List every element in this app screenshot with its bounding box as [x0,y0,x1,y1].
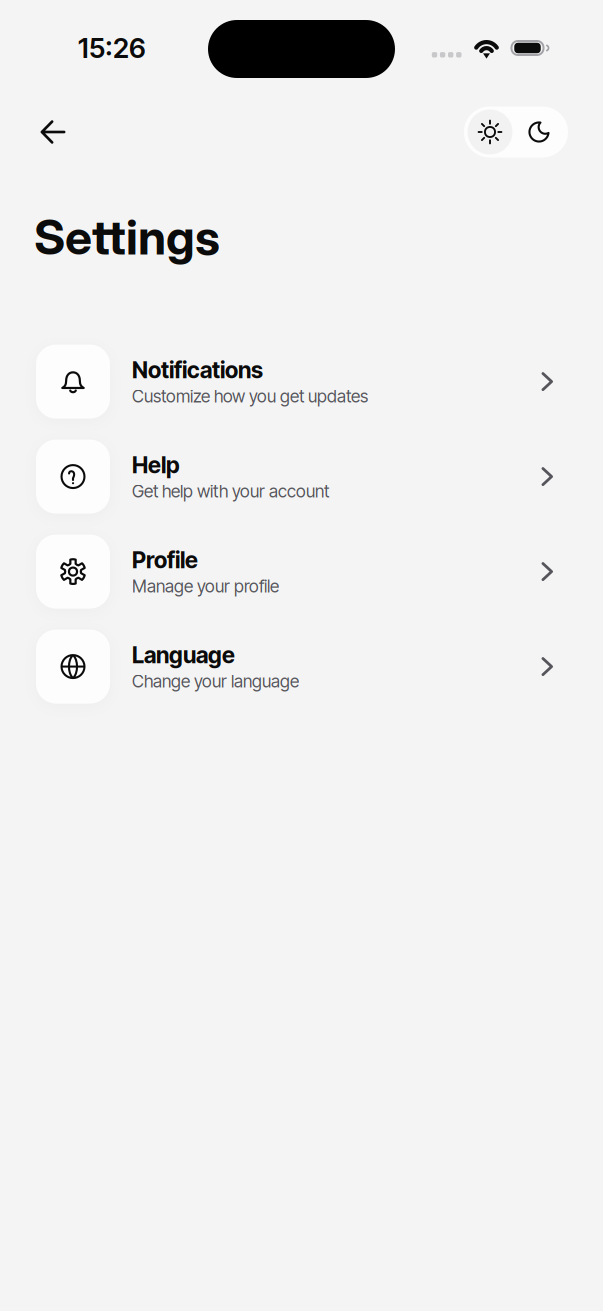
staticText: Manage your profile [132,576,279,597]
button[interactable]: Profile [0,524,603,619]
staticText: Get help with your account [132,481,329,502]
staticText: Change your language [132,671,299,692]
button[interactable]: Back [31,110,75,154]
button[interactable]: Dark appearance [513,109,565,154]
staticText: Settings [34,208,220,266]
staticText: 15:26 [78,31,146,65]
staticText: Language [132,641,235,669]
staticText: Profile [132,546,198,574]
button[interactable]: Notifications [0,334,603,429]
staticText: Notifications [132,356,263,384]
button[interactable]: Help [0,429,603,524]
button[interactable]: Language [0,619,603,714]
staticText: Help [132,451,180,479]
button[interactable]: Light appearance [467,109,513,154]
staticText: Customize how you get updates [132,386,368,407]
